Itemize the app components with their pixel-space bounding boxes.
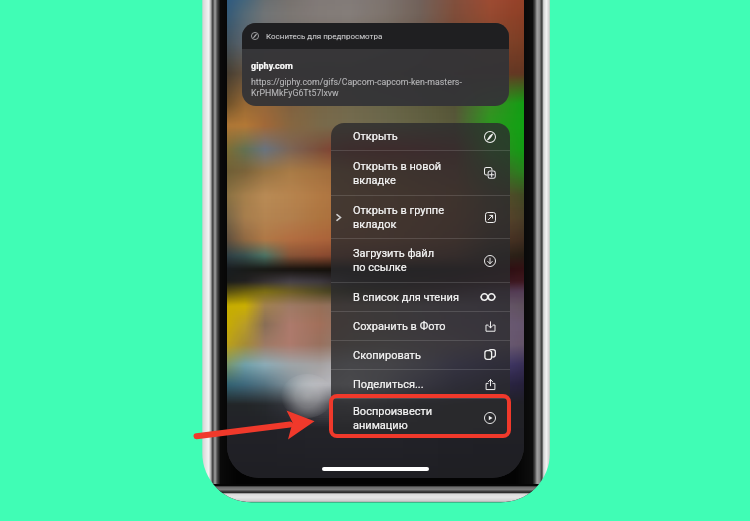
button[interactable]: Воспроизвести анимацию <box>331 399 510 437</box>
button[interactable]: Открыть <box>331 123 510 150</box>
button[interactable]: Загрузить файл по ссылке <box>331 239 510 282</box>
staticText: Воспроизвести анимацию <box>353 405 478 432</box>
staticText: giphy.com <box>251 61 293 72</box>
button[interactable]: Поделиться <box>331 370 510 398</box>
button[interactable]: В список для чтения <box>331 283 510 311</box>
button[interactable]: Сохранить в Фото <box>331 312 510 340</box>
button[interactable]: Открыть в группе вкладок <box>331 196 510 238</box>
staticText: Загрузить файл по ссылке <box>353 247 478 274</box>
staticText: Открыть <box>353 130 478 143</box>
staticText: Открыть в группе вкладок <box>353 204 478 231</box>
button[interactable]: Скопировать <box>331 341 510 369</box>
button[interactable]: Открыть в новой вкладке <box>331 151 510 195</box>
staticText: Открыть в новой вкладке <box>353 160 478 187</box>
staticText: В список для чтения <box>353 291 478 304</box>
staticText: Коснитесь для предпросмотра <box>266 32 383 41</box>
staticText: https://giphy.com/gifs/Capcom-capcom-ken… <box>251 77 476 98</box>
staticText: Сохранить в Фото <box>353 320 478 333</box>
staticText: Поделиться... <box>353 378 478 391</box>
staticText: Скопировать <box>353 349 478 362</box>
